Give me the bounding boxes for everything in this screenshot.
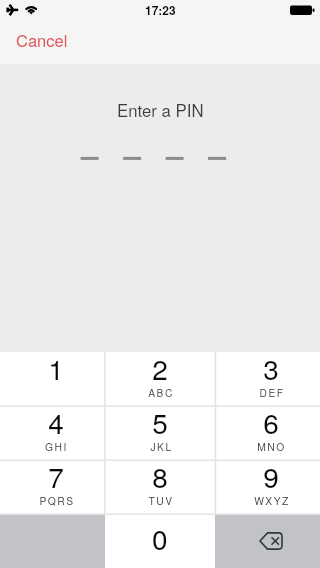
button[interactable]: 7 bbox=[0, 460, 105, 514]
staticText: 0 bbox=[152, 518, 168, 558]
button[interactable]: 6 bbox=[215, 406, 320, 460]
button[interactable]: 3 bbox=[215, 352, 320, 406]
button[interactable]: Blank bbox=[0, 514, 105, 568]
staticText: WXYZ bbox=[254, 493, 290, 508]
staticText: 1 bbox=[48, 348, 64, 388]
button[interactable]: 4 bbox=[0, 406, 105, 460]
staticText: GHI bbox=[45, 439, 68, 454]
staticText: 3 bbox=[263, 348, 279, 388]
staticText: JKL bbox=[150, 439, 173, 454]
staticText: 4 bbox=[48, 402, 64, 442]
staticText: 2 bbox=[152, 348, 168, 388]
button[interactable]: Cancel bbox=[7, 20, 77, 60]
button[interactable]: 2 bbox=[105, 352, 215, 406]
button[interactable]: 8 bbox=[105, 460, 215, 514]
button[interactable]: Delete bbox=[215, 514, 320, 568]
staticText: DEF bbox=[259, 385, 285, 400]
staticText: 7 bbox=[48, 456, 64, 496]
button[interactable]: 0 bbox=[105, 514, 215, 568]
staticText: 6 bbox=[263, 402, 279, 442]
staticText: ABC bbox=[148, 385, 174, 400]
staticText: 17:23 bbox=[145, 1, 176, 18]
staticText: TUV bbox=[148, 493, 174, 508]
staticText: 8 bbox=[152, 456, 168, 496]
button[interactable]: 5 bbox=[105, 406, 215, 460]
staticText: Enter a PIN bbox=[117, 98, 204, 122]
button[interactable]: 1 bbox=[0, 352, 105, 406]
staticText: MNO bbox=[257, 439, 286, 454]
staticText: 5 bbox=[152, 402, 168, 442]
staticText: 9 bbox=[263, 456, 279, 496]
staticText: Cancel bbox=[16, 28, 68, 52]
staticText: PQRS bbox=[39, 493, 75, 508]
button[interactable]: 9 bbox=[215, 460, 320, 514]
